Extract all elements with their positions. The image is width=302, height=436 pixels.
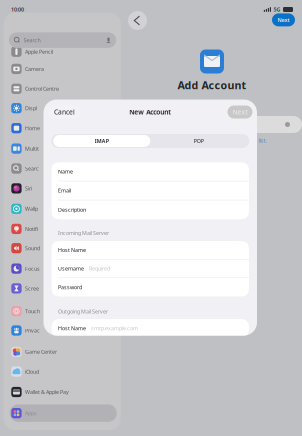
staticText: Outgoing Mail Server — [58, 308, 108, 315]
button[interactable]: Searc — [4, 159, 121, 178]
staticText: Touch — [25, 308, 40, 315]
staticText: Password — [58, 284, 82, 291]
staticText: iCloud — [25, 368, 39, 375]
staticText: POP — [194, 137, 204, 145]
button[interactable]: Back — [128, 11, 147, 30]
staticText: Description — [58, 206, 86, 213]
button[interactable]: Notifi — [4, 219, 121, 239]
staticText: Siri — [25, 185, 32, 192]
staticText: Add Account — [177, 78, 246, 92]
button[interactable]: Privac — [4, 321, 121, 340]
staticText: smtp.example.com — [91, 325, 138, 332]
staticText: Host Name — [58, 325, 86, 332]
button[interactable]: Email — [51, 181, 249, 200]
button[interactable]: Wallet & Apple Pay — [4, 382, 121, 402]
staticText: Name — [58, 168, 73, 175]
button[interactable]: Username — [51, 259, 249, 278]
button[interactable]: Host Name — [51, 319, 249, 337]
staticText: Cancel — [54, 108, 75, 116]
staticText: Required — [89, 265, 110, 272]
staticText: Multit — [25, 145, 39, 152]
button[interactable]: POP — [150, 135, 247, 147]
button[interactable]: Touch — [4, 301, 121, 321]
staticText: Next — [277, 16, 289, 23]
button[interactable]: Control Centre — [4, 79, 121, 99]
staticText: Home — [25, 125, 40, 132]
button[interactable]: Displ — [4, 98, 121, 118]
staticText: list. — [258, 137, 266, 144]
button[interactable]: Apps — [10, 404, 117, 422]
staticText: Scree — [25, 285, 39, 292]
button[interactable]: Password — [51, 278, 249, 296]
button[interactable]: iCloud — [4, 362, 121, 381]
staticText: Focus — [25, 265, 40, 272]
button[interactable]: Description — [51, 200, 249, 219]
staticText: Notifi — [25, 225, 38, 232]
button[interactable]: Wallp — [4, 199, 121, 219]
staticText: Apps — [25, 410, 37, 417]
button[interactable]: Name — [51, 162, 249, 181]
button[interactable]: Next — [272, 13, 295, 26]
button[interactable]: IMAP — [53, 135, 150, 147]
staticText: Incoming Mail Server — [58, 229, 109, 237]
staticText: Game Center — [25, 348, 57, 355]
staticText: Apple Pencil — [25, 48, 53, 55]
staticText: Privac — [25, 327, 40, 334]
staticText: Displ — [25, 105, 37, 112]
staticText: Search — [24, 37, 41, 44]
staticText: IMAP — [95, 137, 109, 145]
button[interactable]: Apple Pencil — [4, 42, 121, 61]
staticText: Searc — [25, 165, 39, 172]
staticText: New Account — [129, 108, 171, 116]
button[interactable]: Search — [9, 32, 116, 48]
staticText: Sound — [25, 245, 40, 252]
button[interactable]: Sound — [4, 238, 121, 258]
button[interactable]: Cancel — [48, 105, 81, 118]
staticText: Host Name — [58, 246, 86, 254]
staticText: Next — [232, 108, 247, 116]
button[interactable]: Next — [227, 105, 252, 118]
button[interactable]: Focus — [4, 259, 121, 278]
staticText: 10:00 — [11, 6, 24, 13]
staticText: Email — [58, 187, 71, 194]
staticText: Username — [58, 265, 84, 272]
button[interactable]: Camera — [4, 59, 121, 79]
staticText: Wallet & Apple Pay — [25, 388, 69, 396]
staticText: Camera — [25, 65, 44, 72]
button[interactable]: Siri — [4, 179, 121, 198]
button[interactable]: Host Name — [51, 241, 249, 259]
button[interactable]: Multit — [4, 139, 121, 158]
button[interactable]: Home — [4, 118, 121, 138]
staticText: 5G — [273, 6, 280, 13]
button[interactable]: Game Center — [4, 342, 121, 362]
staticText: Control Centre — [25, 85, 59, 92]
button[interactable]: Scree — [4, 279, 121, 298]
staticText: Wallp — [25, 205, 38, 212]
